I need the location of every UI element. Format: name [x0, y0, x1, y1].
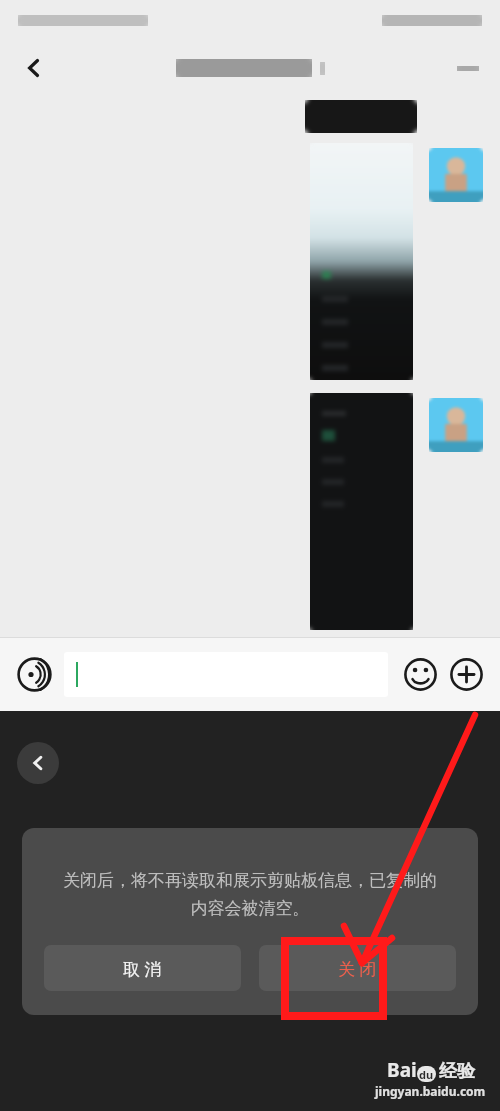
button[interactable]: Back — [17, 742, 59, 784]
button[interactable]: Emoji — [400, 654, 440, 694]
staticText: Bai — [387, 1057, 417, 1083]
button[interactable] — [429, 398, 483, 452]
staticText: 取 消 — [123, 957, 162, 980]
button[interactable]: More — [446, 46, 490, 90]
button[interactable]: Voice input — [14, 654, 54, 694]
button[interactable]: 取 消 — [44, 945, 241, 991]
staticText: 经验 — [439, 1060, 475, 1083]
staticText: 关闭后，将不再读取和展示剪贴板信息，已复制的 内容会被清空。 — [44, 870, 456, 919]
button[interactable] — [429, 148, 483, 202]
staticText: du — [419, 1067, 434, 1082]
button[interactable] — [310, 393, 413, 630]
staticText: jingyan.baidu.com — [375, 1083, 486, 1099]
button[interactable]: More functions — [446, 654, 486, 694]
button[interactable] — [305, 100, 417, 133]
button[interactable] — [64, 652, 388, 697]
button[interactable]: 关 闭 — [259, 945, 456, 991]
button[interactable]: Back — [12, 46, 56, 90]
staticText: 关 闭 — [338, 957, 377, 980]
button[interactable] — [310, 143, 413, 380]
